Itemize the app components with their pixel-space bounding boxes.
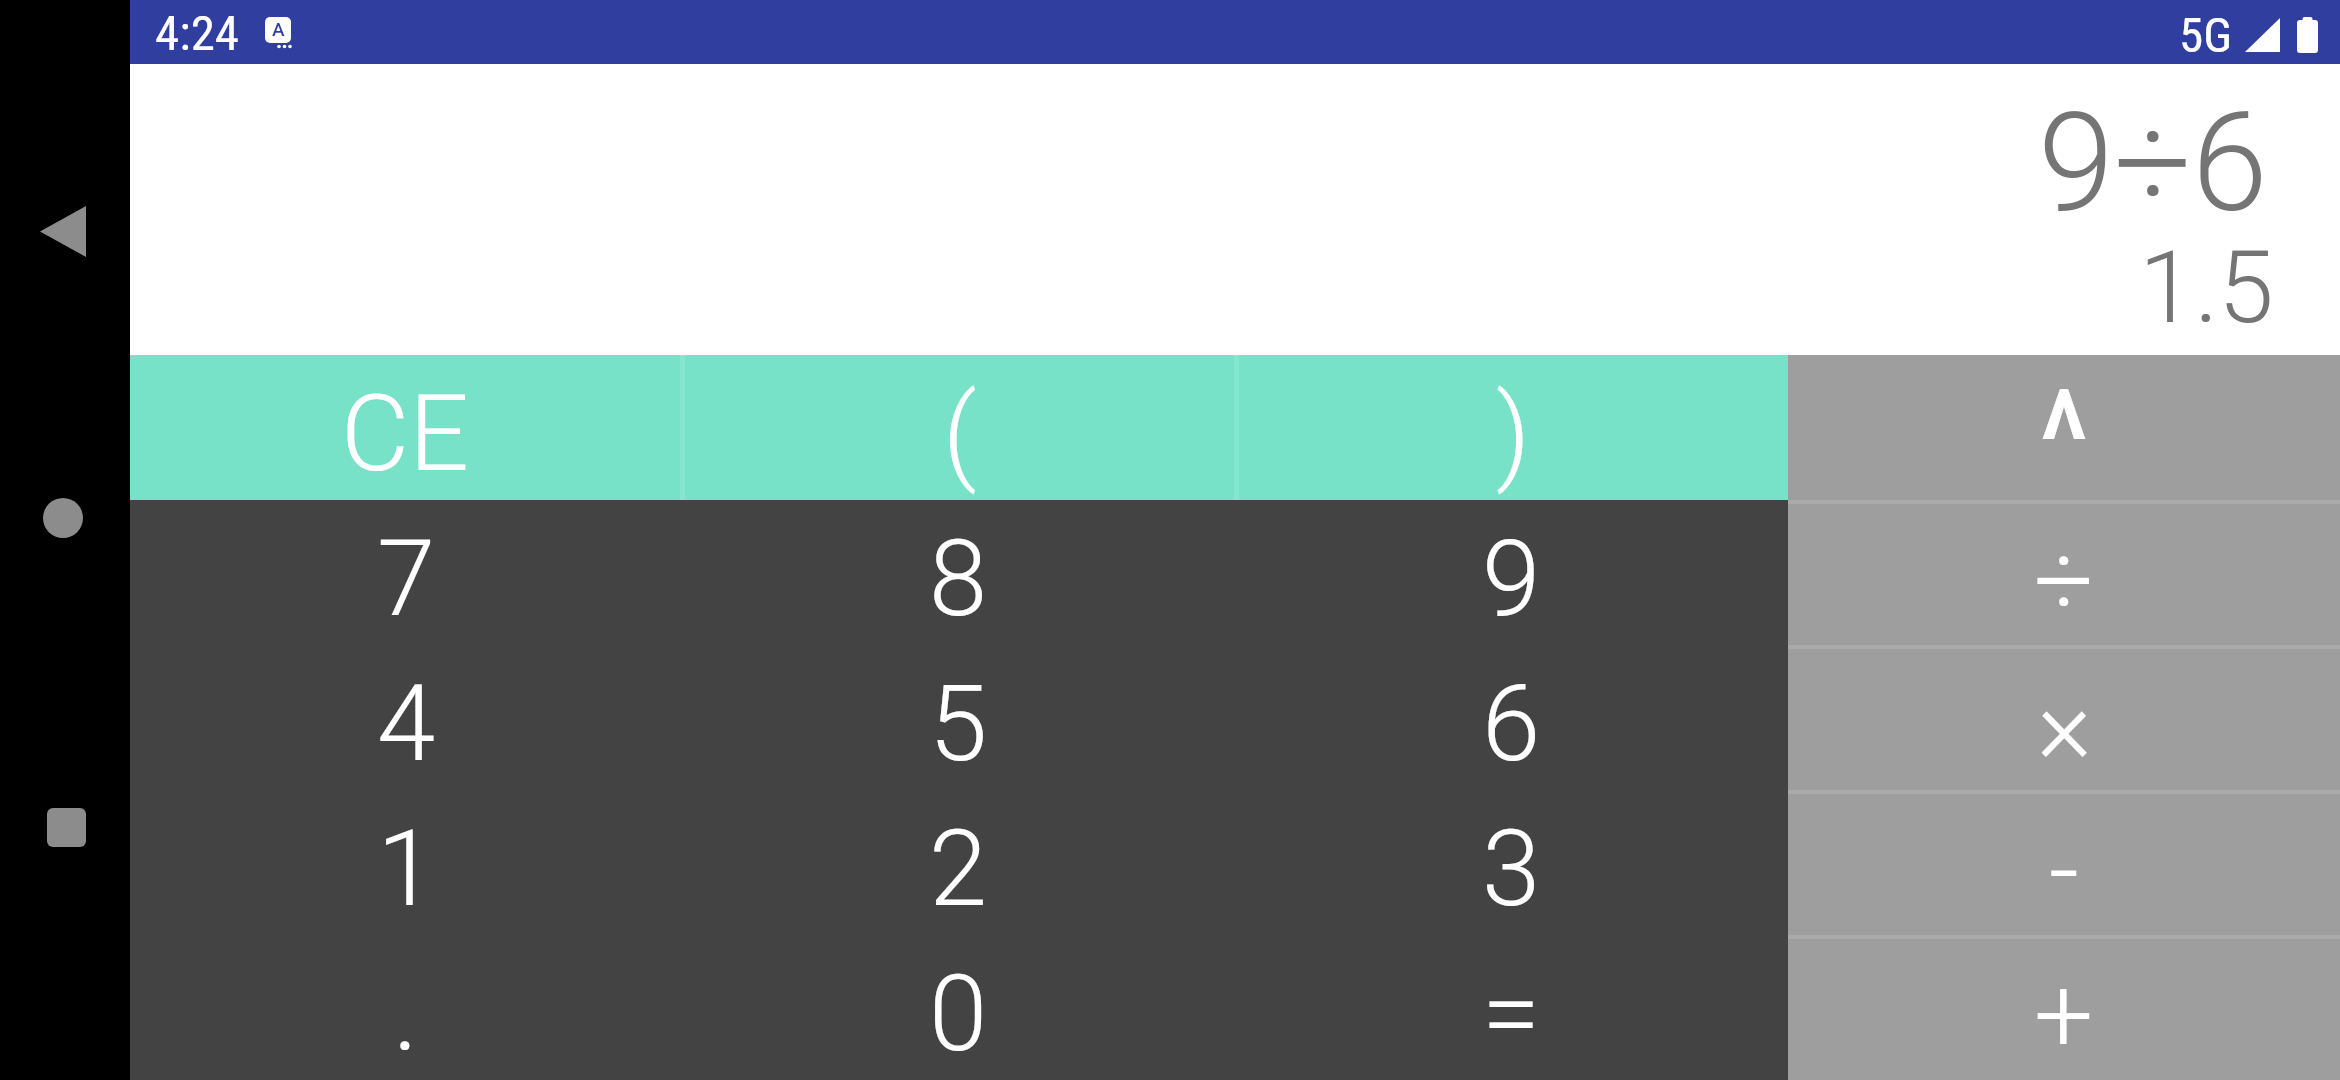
button[interactable] — [33, 488, 93, 548]
button[interactable]: = — [1235, 935, 1788, 1080]
staticText: CE — [341, 373, 469, 496]
staticText: - — [2049, 810, 2080, 933]
staticText: 7 — [377, 518, 436, 641]
staticText: 9 — [1482, 518, 1541, 641]
staticText: 0 — [929, 953, 988, 1076]
staticText: . — [393, 953, 419, 1076]
button[interactable]: 3 — [1235, 790, 1788, 935]
button[interactable]: 2 — [682, 790, 1235, 935]
button[interactable]: . — [130, 935, 682, 1080]
staticText: = — [1482, 953, 1541, 1076]
staticText: 5G — [2179, 7, 2233, 64]
button[interactable]: ( — [685, 355, 1234, 500]
staticText: 6 — [1482, 663, 1541, 786]
staticText: 1.5 — [2139, 229, 2274, 346]
staticText: 1 — [377, 808, 436, 931]
staticText: A — [272, 18, 285, 40]
button[interactable]: 0 — [682, 935, 1235, 1080]
button[interactable]: - — [1788, 794, 2340, 935]
button[interactable]: + — [1788, 939, 2340, 1080]
button[interactable] — [33, 202, 93, 262]
staticText: ( — [943, 373, 977, 496]
button[interactable]: ÷ — [1788, 504, 2340, 645]
staticText: × — [2037, 665, 2092, 788]
staticText: 9÷6 — [2038, 83, 2268, 244]
button[interactable] — [36, 797, 96, 857]
staticText: ) — [1496, 373, 1531, 496]
staticText: 3 — [1482, 808, 1541, 931]
staticText: 5 — [929, 663, 988, 786]
staticText: ÷ — [2034, 520, 2094, 643]
button[interactable]: 9 — [1235, 500, 1788, 645]
staticText: 2 — [929, 808, 988, 931]
staticText: ^ — [2038, 359, 2090, 504]
button[interactable]: ^ — [1788, 355, 2340, 500]
button[interactable]: 7 — [130, 500, 682, 645]
button[interactable]: ) — [1239, 355, 1788, 500]
button[interactable]: 5 — [682, 645, 1235, 790]
staticText: 4:24 — [155, 5, 240, 62]
button[interactable]: 8 — [682, 500, 1235, 645]
button[interactable]: 1 — [130, 790, 682, 935]
staticText: 8 — [929, 518, 988, 641]
staticText: + — [2034, 955, 2094, 1078]
button[interactable]: × — [1788, 649, 2340, 790]
button[interactable]: 4 — [130, 645, 682, 790]
button[interactable]: 6 — [1235, 645, 1788, 790]
staticText: 4 — [377, 663, 436, 786]
button[interactable]: CE — [130, 355, 680, 500]
